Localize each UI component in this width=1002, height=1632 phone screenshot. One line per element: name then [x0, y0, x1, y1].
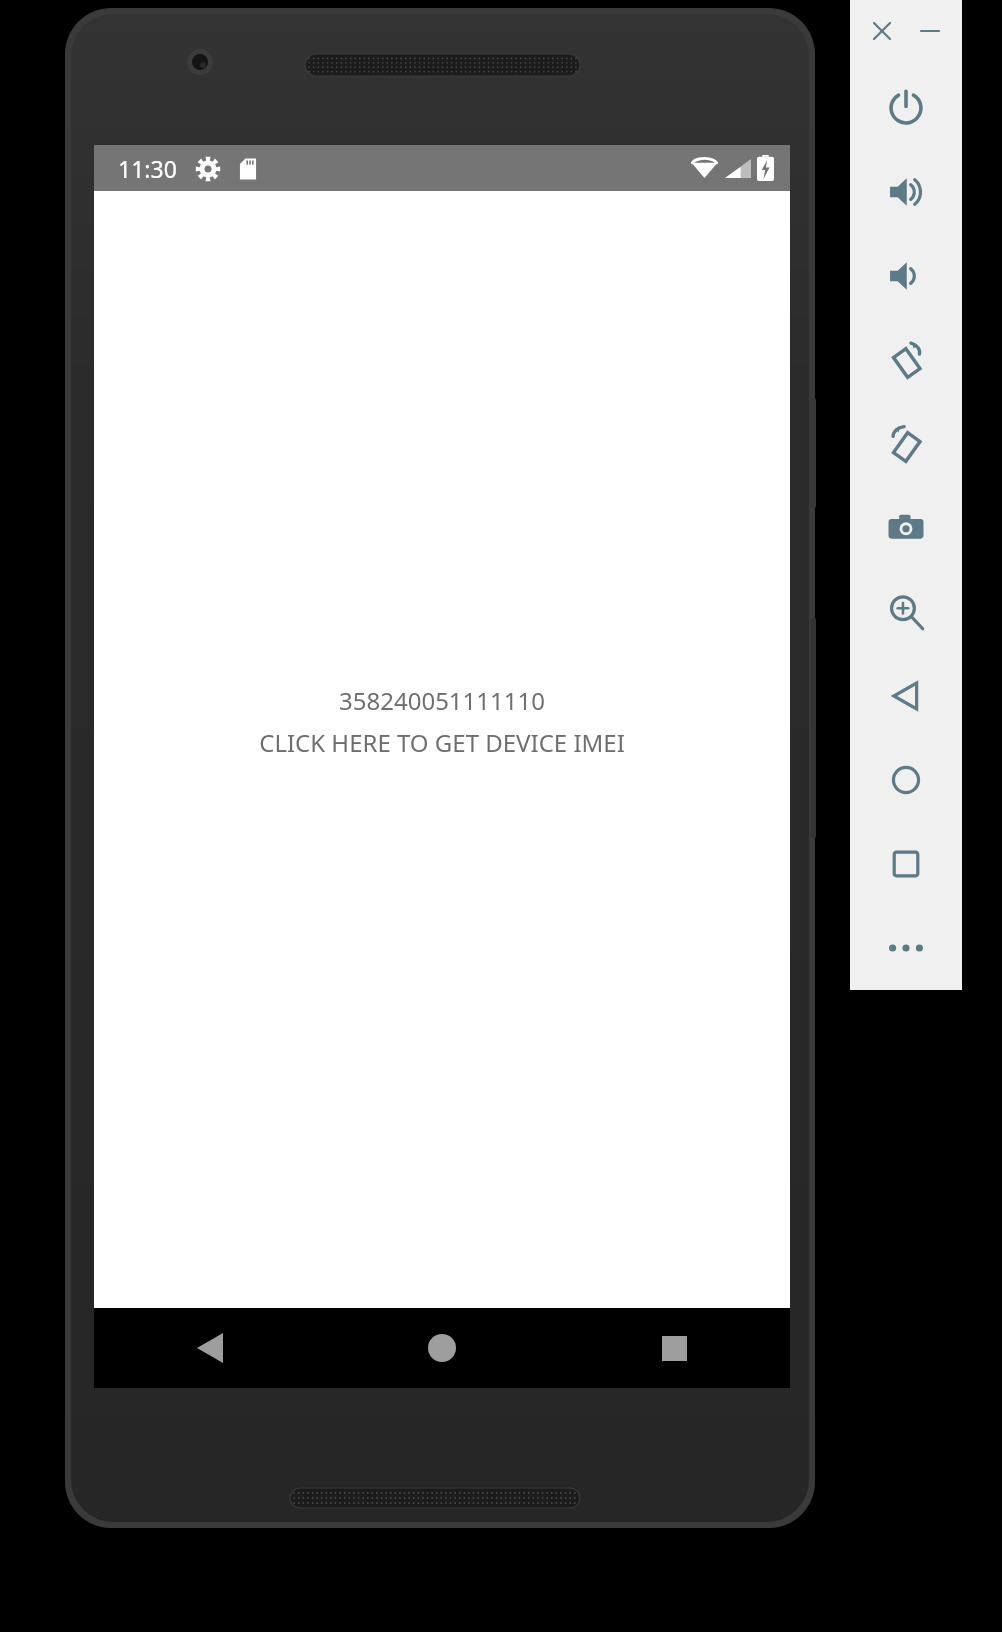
button[interactable]: Overview — [864, 822, 948, 906]
button[interactable]: Power — [864, 66, 948, 150]
button[interactable]: Home — [864, 738, 948, 822]
button[interactable]: Recent apps — [558, 1308, 790, 1388]
button[interactable]: Close — [865, 14, 899, 48]
button[interactable]: Minimize — [913, 14, 947, 48]
button[interactable]: Volume up — [864, 150, 948, 234]
button[interactable]: More — [871, 920, 941, 976]
button[interactable]: Volume down — [864, 234, 948, 318]
button[interactable]: Rotate right — [864, 402, 948, 486]
button[interactable]: Back — [94, 1308, 326, 1388]
button[interactable]: Back — [864, 654, 948, 738]
staticText: 358240051111110 — [339, 684, 545, 717]
staticText: CLICK HERE TO GET DEVICE IMEI — [259, 726, 625, 759]
button[interactable]: 358240051111110 — [94, 684, 790, 759]
button[interactable]: Take screenshot — [864, 486, 948, 570]
staticText: 11:30 — [118, 153, 177, 184]
button[interactable]: Home — [326, 1308, 558, 1388]
button[interactable]: Rotate left — [864, 318, 948, 402]
button[interactable]: Zoom — [864, 570, 948, 654]
